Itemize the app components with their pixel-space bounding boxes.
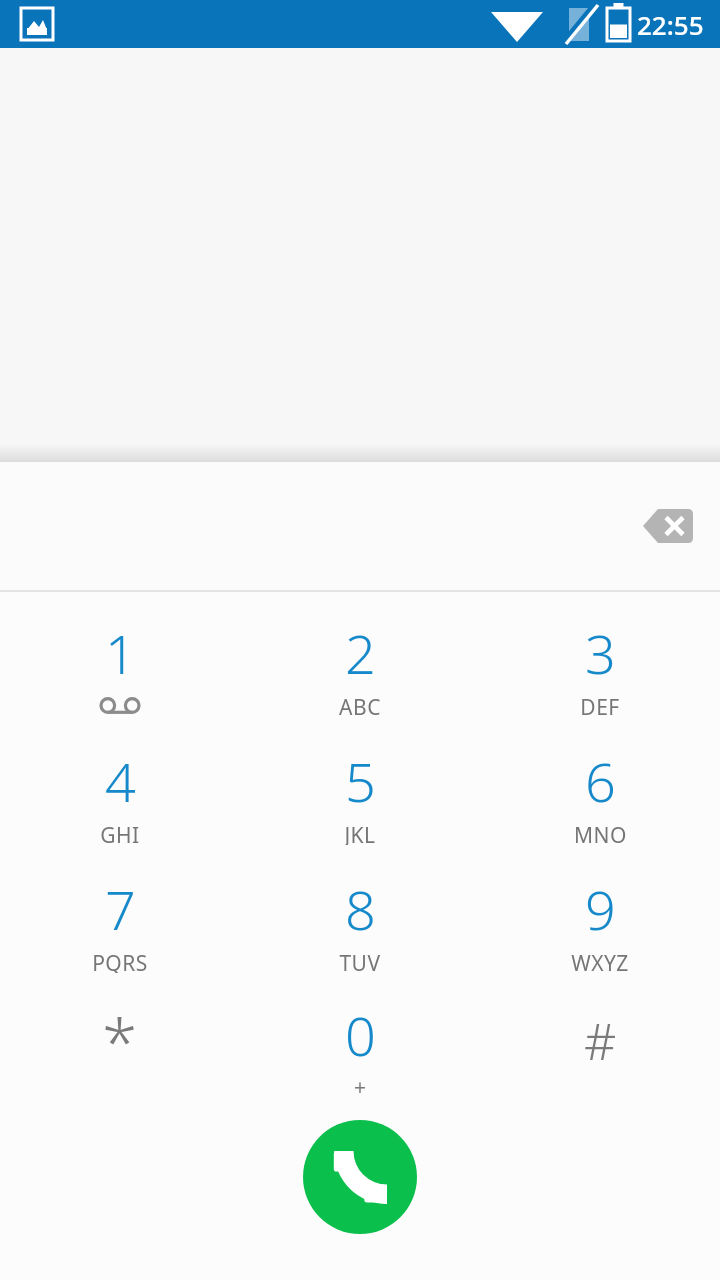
button[interactable]: 3 <box>480 602 720 730</box>
button[interactable]: 5 <box>240 730 480 858</box>
staticText: ABC <box>339 693 381 717</box>
button[interactable]: Call <box>303 1120 417 1234</box>
button[interactable]: 7 <box>0 858 240 986</box>
staticText: 7 <box>105 872 136 946</box>
button[interactable]: # <box>480 986 720 1114</box>
button[interactable]: 0 <box>240 986 480 1114</box>
staticText: 2 <box>345 616 376 690</box>
staticText: GHI <box>100 821 140 845</box>
staticText: JKL <box>344 821 376 845</box>
staticText: # <box>584 1007 617 1075</box>
button[interactable]: 2 <box>240 602 480 730</box>
staticText: 9 <box>585 872 616 946</box>
staticText: DEF <box>580 693 620 717</box>
staticText: WXYZ <box>571 949 629 973</box>
staticText: 8 <box>345 872 376 946</box>
staticText: 3 <box>585 616 616 690</box>
button[interactable]: 1 <box>0 602 240 730</box>
staticText: * <box>102 998 138 1085</box>
button[interactable]: Delete <box>628 490 708 562</box>
staticText: + <box>354 1073 367 1102</box>
staticText: 6 <box>585 744 616 818</box>
button[interactable]: 9 <box>480 858 720 986</box>
staticText: 22:55 <box>637 7 704 42</box>
staticText: 1 <box>105 616 136 690</box>
staticText: MNO <box>574 821 627 845</box>
button[interactable]: 6 <box>480 730 720 858</box>
button[interactable]: 8 <box>240 858 480 986</box>
staticText: 4 <box>105 744 136 818</box>
button[interactable]: 4 <box>0 730 240 858</box>
button[interactable]: * <box>0 986 240 1114</box>
staticText: 0 <box>345 998 376 1072</box>
staticText: PQRS <box>92 949 148 973</box>
staticText: TUV <box>339 949 381 973</box>
staticText: 5 <box>345 744 376 818</box>
